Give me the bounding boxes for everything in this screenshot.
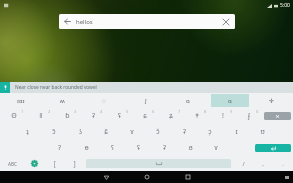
staticText: ʃ	[145, 97, 147, 105]
staticText: ◌	[102, 97, 106, 105]
staticText: 4	[100, 109, 103, 114]
button[interactable]: ʔ	[46, 140, 73, 156]
button[interactable]: ʢ	[125, 140, 151, 156]
staticText: Near close near back rounded vowel	[15, 84, 97, 91]
button[interactable]: ɔ̃	[41, 124, 67, 140]
staticText: ,	[262, 160, 264, 168]
button[interactable]: Backspace	[262, 108, 293, 124]
staticText: ʘ	[11, 111, 17, 121]
staticText: 0	[256, 109, 259, 114]
button[interactable]: ʡ	[151, 140, 177, 156]
staticText: 8	[204, 109, 207, 114]
button[interactable]: ]	[64, 156, 84, 171]
staticText: ɤ	[214, 143, 218, 153]
staticText: 3	[74, 109, 77, 114]
button[interactable]: ABC	[0, 156, 25, 171]
button[interactable]: ɵ	[73, 140, 99, 156]
staticText: 5:00	[280, 2, 290, 9]
button[interactable]: ʖ	[67, 124, 93, 140]
staticText: 9	[230, 109, 233, 114]
button[interactable]: Home	[141, 171, 153, 183]
staticText: ɔ̆	[156, 127, 160, 137]
staticText: ɪ	[235, 127, 238, 137]
staticText: ʡ	[92, 111, 95, 121]
button[interactable]: Enter	[253, 140, 293, 156]
staticText: ǂ	[195, 111, 199, 121]
button[interactable]: ʇ	[14, 124, 41, 140]
button[interactable]: ɪ	[223, 124, 249, 140]
button[interactable]: ʘ	[0, 108, 27, 124]
staticText: ʢ	[118, 111, 121, 121]
button[interactable]: Symbol category 7	[253, 94, 291, 107]
button[interactable]: ʄ	[236, 108, 262, 124]
button[interactable]: Voice input	[0, 82, 10, 93]
staticText: ʑ	[169, 111, 173, 121]
button[interactable]: ʡ	[80, 108, 106, 124]
staticText: [	[53, 159, 56, 168]
button[interactable]: ɤ	[203, 140, 229, 156]
button[interactable]: ʑ	[158, 108, 184, 124]
staticText: ɵ	[84, 143, 89, 153]
staticText: ʕ	[111, 143, 114, 153]
button[interactable]: ɓ	[54, 108, 80, 124]
staticText: ɕ	[143, 111, 147, 121]
button[interactable]: Recent apps	[182, 171, 194, 183]
button[interactable]: ɕ	[132, 108, 158, 124]
button[interactable]: [	[44, 156, 64, 171]
button[interactable]: ɔ̆	[145, 124, 171, 140]
staticText: ɞ	[188, 143, 193, 153]
button[interactable]: Back	[59, 14, 76, 29]
staticText: 7	[178, 109, 181, 114]
staticText: ʡ	[163, 143, 166, 153]
staticText: /	[242, 160, 245, 168]
staticText: ɑ	[186, 97, 190, 105]
button[interactable]: ɕ̃	[93, 124, 119, 140]
button[interactable]: Symbol category 6	[211, 94, 249, 107]
staticText: ʊ	[260, 127, 265, 137]
staticText: ɓ	[65, 111, 70, 121]
button[interactable]: Symbol category 1	[2, 94, 39, 107]
button[interactable]: Symbol category 4	[127, 94, 165, 107]
button[interactable]: ɞ	[177, 140, 203, 156]
staticText: ɕ̃	[104, 127, 108, 137]
staticText: ʡ	[183, 127, 186, 137]
staticText: 2	[48, 109, 51, 114]
staticText: ʔ	[58, 143, 61, 153]
staticText: hellos	[76, 18, 93, 26]
button[interactable]: ɔ̹	[197, 124, 223, 140]
staticText: ʖ	[79, 127, 82, 137]
button[interactable]: ɤ	[119, 124, 145, 140]
staticText: ɑ	[228, 97, 232, 105]
button[interactable]: ʕ	[99, 140, 125, 156]
button[interactable]: ʢ	[106, 108, 132, 124]
staticText: ǃ	[222, 111, 224, 121]
button[interactable]: ǂ	[184, 108, 210, 124]
button[interactable]: ǃ	[210, 108, 236, 124]
button[interactable]: Back	[59, 14, 235, 29]
button[interactable]: /	[233, 156, 253, 171]
button[interactable]: Space	[86, 159, 231, 168]
button[interactable]: Symbol category 5	[169, 94, 207, 107]
staticText: ɪɪɪɪ	[17, 97, 25, 105]
button[interactable]: ʊ	[249, 124, 275, 140]
button[interactable]: Near close near back rounded vowel	[15, 82, 293, 93]
button[interactable]: Clear search	[217, 14, 235, 29]
button[interactable]: Back	[100, 171, 112, 183]
button[interactable]: ǁ	[27, 108, 54, 124]
staticText: ✛	[269, 97, 275, 104]
staticText: .	[282, 160, 284, 168]
staticText: ʇ	[26, 127, 29, 137]
button[interactable]: ʡ	[171, 124, 197, 140]
staticText: ʍ	[60, 97, 65, 105]
staticText: ]	[73, 159, 76, 168]
staticText: ɤ	[130, 127, 134, 137]
staticText: ǁ	[39, 111, 43, 121]
button[interactable]: Symbol category 2	[43, 94, 81, 107]
button[interactable]: Keyboard settings	[25, 156, 44, 171]
staticText: 6	[152, 109, 155, 114]
staticText: ʢ	[137, 143, 140, 153]
staticText: ABC	[8, 161, 17, 167]
